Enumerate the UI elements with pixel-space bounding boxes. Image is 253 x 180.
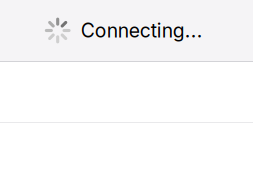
button[interactable]: Connecting... (0, 0, 253, 61)
staticText: Connecting... (81, 19, 203, 42)
